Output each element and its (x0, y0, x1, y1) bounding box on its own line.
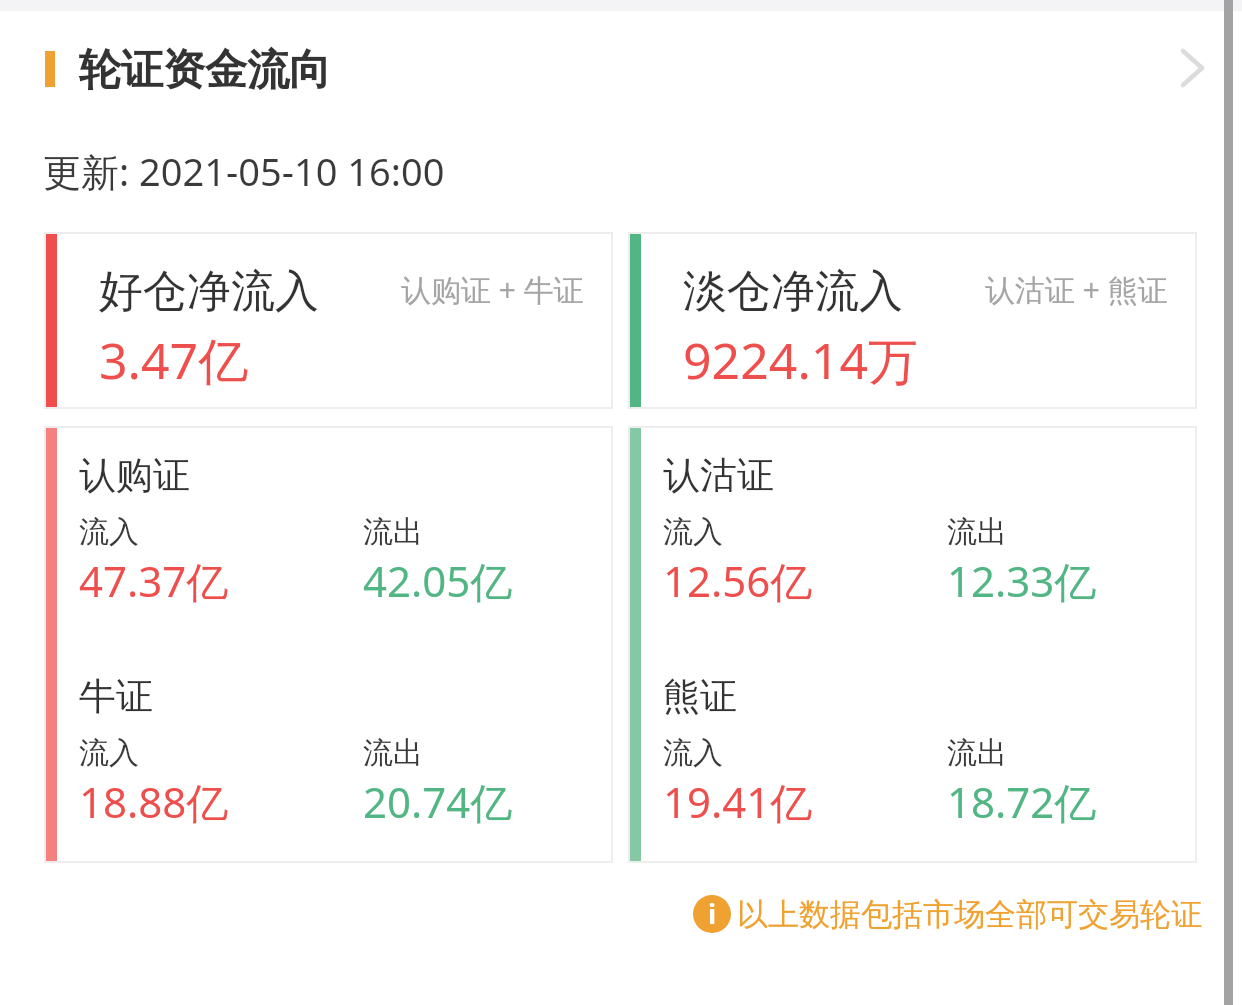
staticText: 18.88亿 (79, 773, 229, 830)
staticText: 18.72亿 (947, 773, 1097, 830)
staticText: 牛证 (79, 673, 153, 720)
staticText: 认沽证 + 熊证 (985, 269, 1168, 310)
staticText: 认购证 (79, 452, 190, 499)
button[interactable]: 认购证 (44, 426, 613, 863)
staticText: 流出 (947, 734, 1007, 772)
staticText: 流入 (663, 734, 723, 772)
staticText: 19.41亿 (663, 773, 813, 830)
staticText: 流出 (363, 734, 423, 772)
staticText: 12.33亿 (947, 552, 1097, 609)
staticText: 以上数据包括市场全部可交易轮证 (737, 895, 1202, 934)
staticText: 9224.14万 (683, 326, 918, 394)
button[interactable]: 好仓净流入 (44, 232, 613, 409)
staticText: 认沽证 (663, 452, 774, 499)
staticText: 轮证资金流向 (79, 44, 331, 97)
staticText: 流入 (79, 734, 139, 772)
staticText: 12.56亿 (663, 552, 813, 609)
staticText: 流出 (363, 513, 423, 551)
staticText: 3.47亿 (99, 326, 249, 394)
staticText: 流入 (79, 513, 139, 551)
staticText: 流出 (947, 513, 1007, 551)
staticText: 认购证 + 牛证 (401, 269, 584, 310)
staticText: 42.05亿 (363, 552, 513, 609)
staticText: 20.74亿 (363, 773, 513, 830)
staticText: 更新: 2021-05-10 16:00 (43, 145, 445, 197)
staticText: 47.37亿 (79, 552, 229, 609)
button[interactable]: 轮证资金流向 (0, 11, 1242, 131)
staticText: i (708, 895, 717, 932)
button[interactable]: 认沽证 (628, 426, 1197, 863)
staticText: 流入 (663, 513, 723, 551)
staticText: 熊证 (663, 673, 737, 720)
button[interactable]: i (693, 893, 1202, 935)
button[interactable]: 淡仓净流入 (628, 232, 1197, 409)
staticText: 淡仓净流入 (683, 264, 903, 319)
staticText: 好仓净流入 (99, 264, 319, 319)
